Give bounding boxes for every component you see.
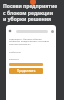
staticText: Посеви предприятие с блоком редакции и у…	[3, 3, 61, 22]
button[interactable]: Продолжить	[9, 68, 43, 74]
button[interactable]	[16, 30, 48, 33]
staticText: Вариант	[9, 57, 20, 60]
button[interactable]: Back	[8, 29, 12, 33]
staticText: Редакции с блоком уборки решения предпри…	[9, 37, 53, 46]
button[interactable]	[9, 63, 43, 66]
staticText: Выберите	[9, 50, 21, 53]
staticText: Продолжить	[17, 69, 36, 73]
